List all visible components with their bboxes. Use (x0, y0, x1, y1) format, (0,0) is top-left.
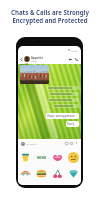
staticText: Sorry (67, 122, 75, 126)
button[interactable]: Emoji (65, 149, 81, 165)
button[interactable]: Emoji (49, 165, 65, 182)
button[interactable]: Emoji (33, 149, 49, 165)
staticText: Encrypted and Protected (12, 16, 88, 24)
button[interactable]: Emoji (65, 165, 81, 182)
button[interactable]: Emoji (18, 165, 33, 182)
staticText: 12:30 (71, 49, 78, 52)
button[interactable]: Microphone (74, 141, 79, 146)
staticText: Appetite (31, 56, 44, 60)
button[interactable]: Emoji (20, 141, 25, 146)
button[interactable]: Back (19, 57, 24, 62)
button[interactable]: Call (73, 56, 79, 62)
staticText: Chats & Calls are Strongly (11, 8, 89, 16)
button[interactable]: Attach (64, 141, 69, 146)
button[interactable]: Emoji (33, 165, 49, 182)
button[interactable]: Video call (67, 56, 73, 62)
staticText: Message (26, 142, 37, 145)
button[interactable]: Emoji (49, 149, 65, 165)
staticText: Oops, wrong person (47, 114, 75, 118)
button[interactable]: Emoji (18, 149, 33, 165)
button[interactable]: Camera (69, 141, 74, 146)
staticText: online (31, 60, 38, 63)
